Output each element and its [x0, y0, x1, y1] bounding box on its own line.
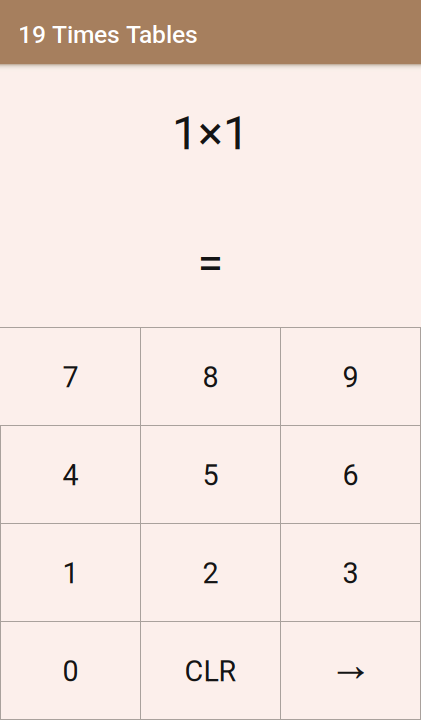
staticText: 3 — [342, 557, 358, 590]
button[interactable]: 1 — [1, 524, 140, 621]
staticText: = — [197, 236, 223, 290]
button[interactable]: 2 — [141, 524, 280, 621]
staticText: 0 — [62, 655, 78, 688]
staticText: 9 — [342, 361, 358, 394]
button[interactable]: CLR — [141, 622, 280, 719]
button[interactable]: 3 — [281, 524, 420, 621]
staticText: 5 — [202, 459, 218, 492]
staticText: 7 — [62, 361, 78, 394]
staticText: 1 — [62, 557, 78, 590]
staticText: 8 — [202, 361, 218, 394]
staticText: 2 — [202, 557, 218, 590]
staticText: → — [336, 650, 365, 693]
button[interactable]: 7 — [1, 328, 140, 425]
button[interactable]: 6 — [281, 426, 420, 523]
staticText: 1×1 — [172, 106, 249, 161]
button[interactable]: Next — [281, 622, 420, 719]
staticText: 4 — [62, 459, 78, 492]
button[interactable]: 9 — [281, 328, 420, 425]
button[interactable]: 0 — [1, 622, 140, 719]
button[interactable]: 5 — [141, 426, 280, 523]
staticText: CLR — [184, 655, 236, 688]
button[interactable]: 4 — [1, 426, 140, 523]
staticText: 19 Times Tables — [18, 20, 198, 49]
button[interactable]: 8 — [141, 328, 280, 425]
staticText: 6 — [342, 459, 358, 492]
